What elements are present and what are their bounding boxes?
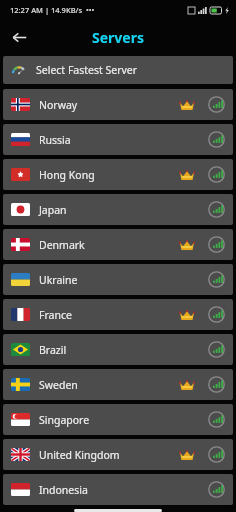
staticText: 12:27 AM | 14.9KB/s ••• — [10, 5, 95, 15]
button[interactable]: Brazil — [3, 334, 233, 365]
button[interactable]: Singapore — [3, 404, 233, 435]
button[interactable]: Sweden — [3, 369, 233, 400]
staticText: Singapore — [39, 413, 90, 427]
staticText: France — [39, 308, 72, 322]
button[interactable]: Ukraine — [3, 264, 233, 295]
button[interactable]: Select Fastest Server — [3, 56, 233, 84]
button[interactable]: France — [3, 299, 233, 330]
staticText: Indonesia — [39, 483, 88, 497]
staticText: Russia — [39, 133, 71, 147]
button[interactable]: Norway — [3, 89, 233, 120]
staticText: Hong Kong — [39, 168, 95, 182]
staticText: Sweden — [39, 378, 78, 392]
staticText: Japan — [39, 203, 67, 217]
staticText: Ukraine — [39, 273, 78, 287]
button[interactable]: Japan — [3, 194, 233, 225]
staticText: Brazil — [39, 343, 67, 357]
button[interactable]: Indonesia — [3, 474, 233, 505]
staticText: United Kingdom — [39, 448, 120, 462]
button[interactable]: Back — [5, 23, 33, 51]
button[interactable]: United Kingdom — [3, 439, 233, 470]
staticText: Norway — [39, 98, 78, 112]
staticText: Select Fastest Server — [36, 63, 138, 77]
staticText: Servers — [92, 28, 144, 47]
staticText: Denmark — [39, 238, 85, 252]
button[interactable]: Hong Kong — [3, 159, 233, 190]
button[interactable]: Russia — [3, 124, 233, 155]
button[interactable]: Denmark — [3, 229, 233, 260]
